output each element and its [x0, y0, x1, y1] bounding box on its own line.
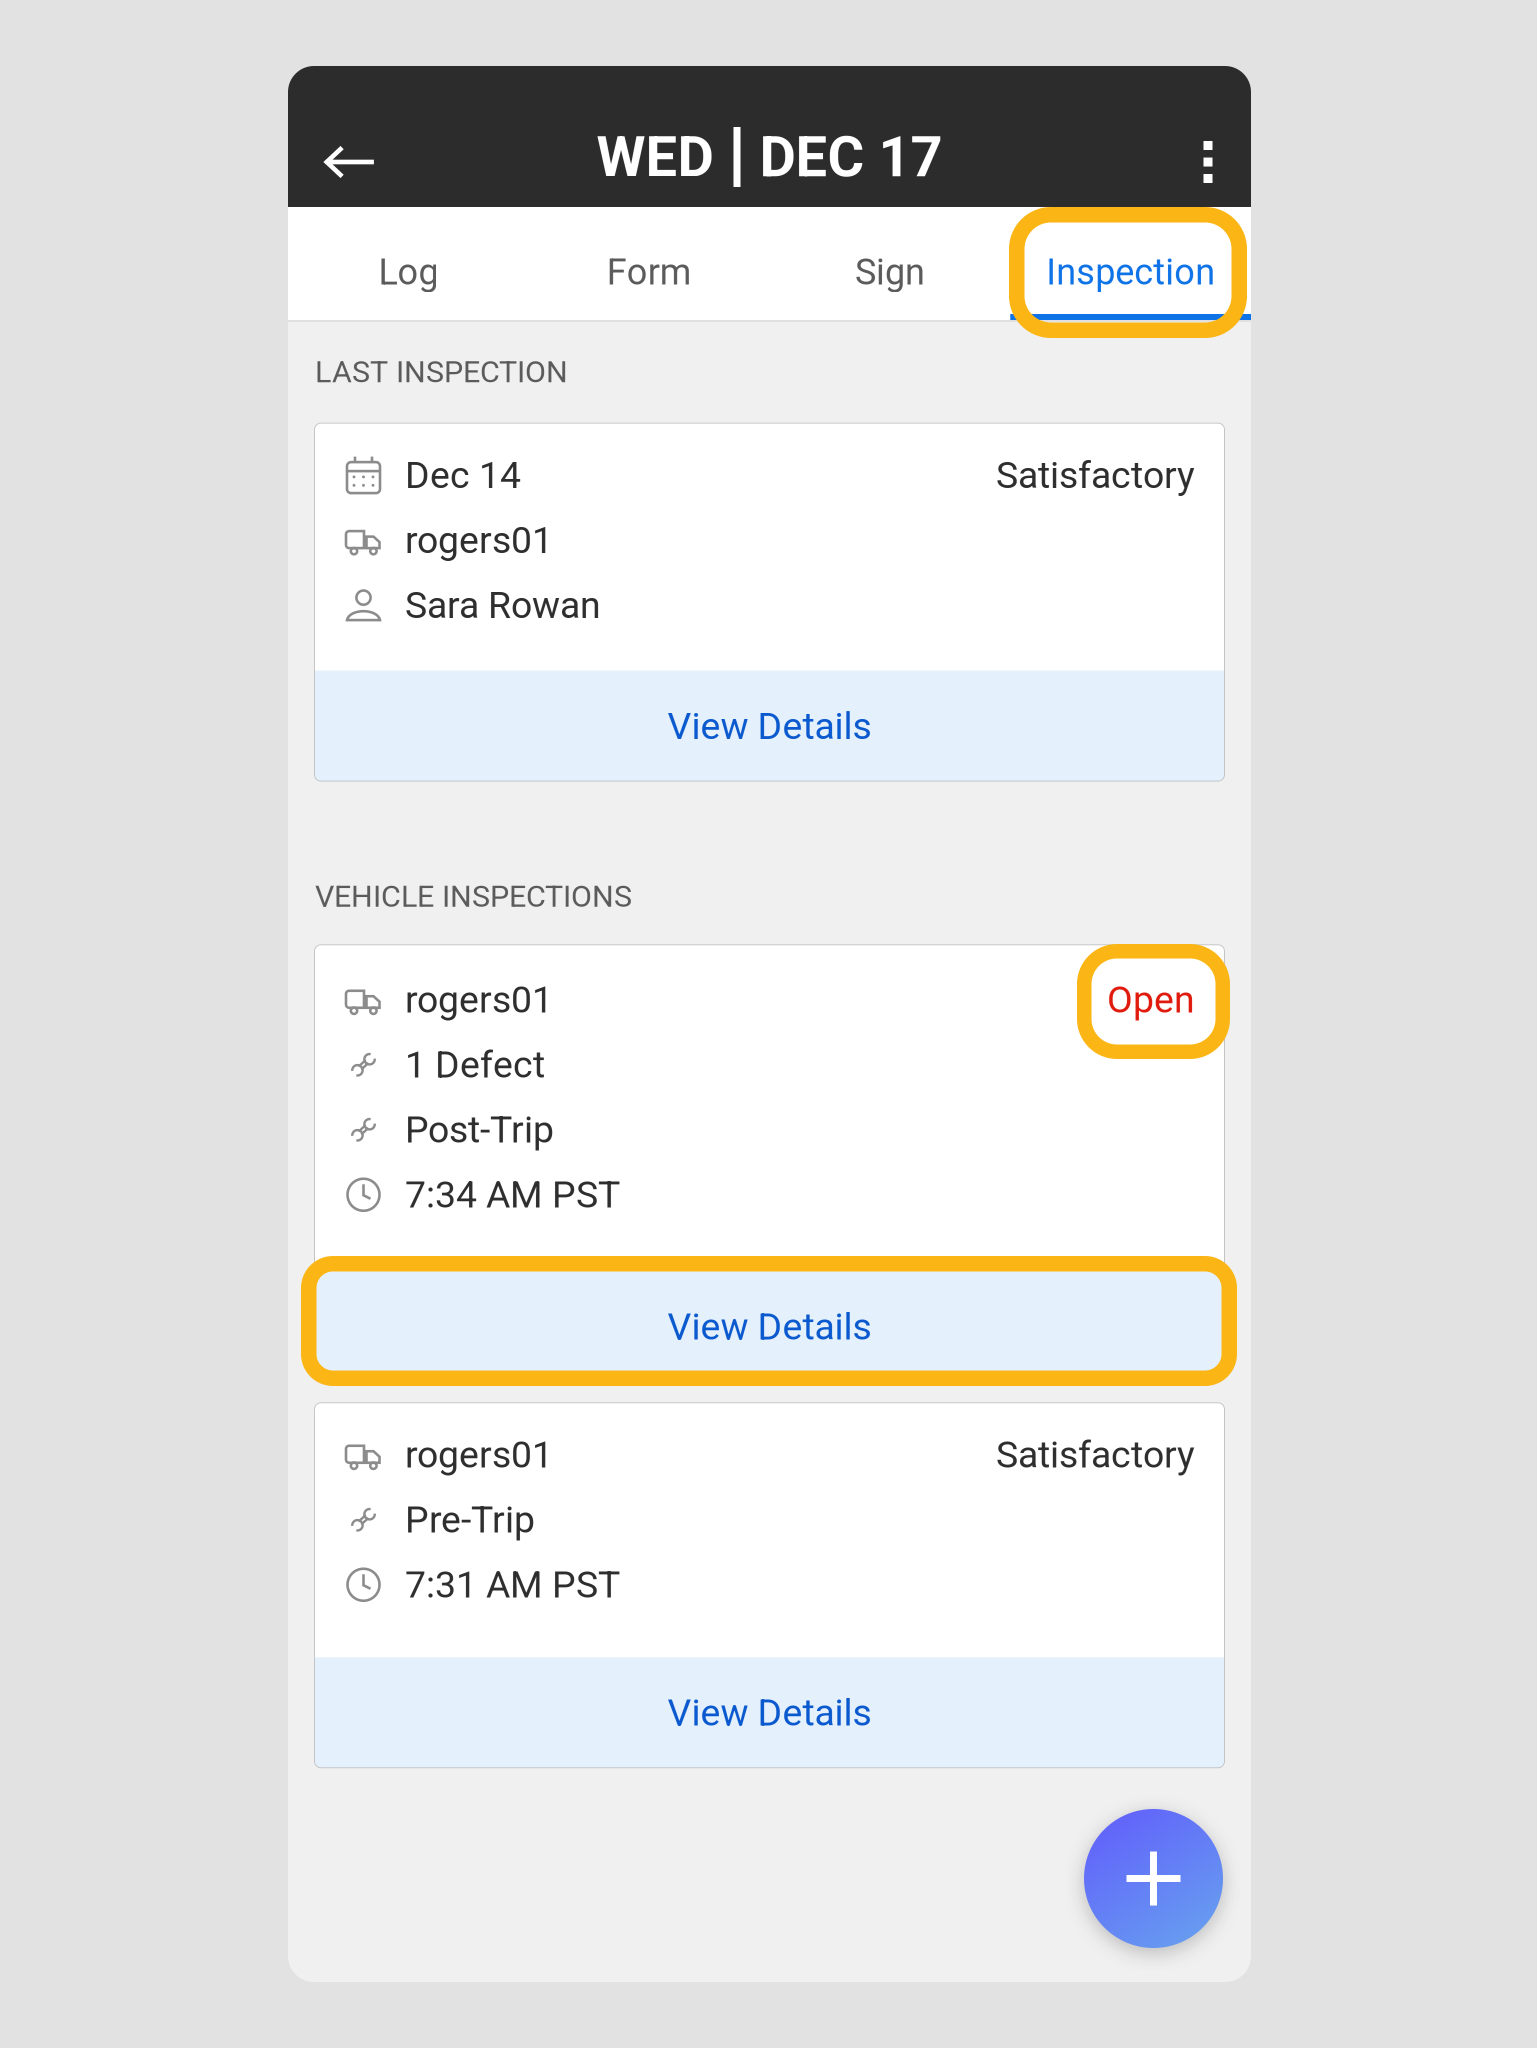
staticText: 7:31 AM PST — [405, 1563, 620, 1607]
staticText: Satisfactory — [996, 453, 1195, 497]
staticText: rogers01 — [405, 1433, 553, 1477]
staticText: LAST INSPECTION — [315, 354, 568, 390]
button[interactable]: Add inspection — [1084, 1809, 1223, 1948]
button[interactable]: Inspection — [1010, 207, 1251, 320]
staticText: VEHICLE INSPECTIONS — [315, 879, 632, 914]
button[interactable]: View Details — [314, 1657, 1225, 1768]
staticText: Form — [607, 251, 692, 293]
staticText: View Details — [667, 1305, 871, 1349]
staticText: Satisfactory — [996, 1433, 1195, 1477]
staticText: WED — [596, 124, 713, 190]
staticText: Open — [1107, 978, 1195, 1022]
button[interactable]: Log — [288, 207, 529, 320]
button[interactable]: View Details — [314, 1271, 1225, 1382]
button[interactable]: More options — [1141, 113, 1251, 201]
staticText: rogers01 — [405, 518, 553, 562]
staticText: 7:34 AM PST — [405, 1173, 620, 1217]
button[interactable]: Sign — [769, 207, 1010, 320]
button[interactable]: View Details — [314, 671, 1225, 782]
staticText: Post-Trip — [405, 1108, 554, 1152]
staticText: 1 Defect — [405, 1043, 545, 1087]
staticText: rogers01 — [405, 978, 553, 1022]
staticText: Sign — [855, 251, 925, 293]
button[interactable]: Back — [288, 113, 398, 201]
staticText: Inspection — [1046, 251, 1215, 293]
staticText: Dec 14 — [405, 453, 521, 497]
staticText: Pre-Trip — [405, 1498, 535, 1542]
staticText: View Details — [667, 1691, 871, 1735]
staticText: Sara Rowan — [405, 583, 601, 627]
button[interactable]: Form — [529, 207, 770, 320]
staticText: DEC 17 — [759, 124, 942, 190]
staticText: Log — [378, 251, 438, 293]
staticText: View Details — [667, 704, 871, 748]
